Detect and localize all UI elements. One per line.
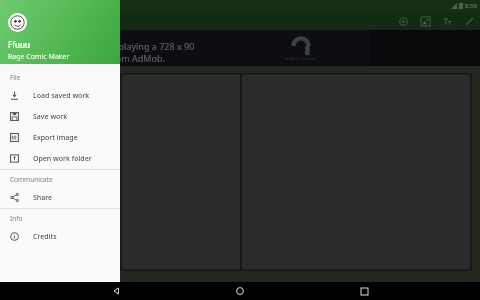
staticText: AdMob Console bbox=[286, 56, 316, 61]
staticText: Communicate bbox=[10, 175, 53, 184]
button[interactable]: Share bbox=[0, 187, 120, 208]
button[interactable]: Load saved work bbox=[0, 85, 120, 106]
button[interactable]: Insert image bbox=[418, 14, 432, 28]
staticText: Share bbox=[33, 193, 53, 203]
staticText: work! bbox=[41, 48, 56, 55]
button[interactable]: Text bbox=[440, 14, 454, 28]
staticText: File bbox=[10, 73, 21, 82]
button[interactable]: Draw bbox=[462, 14, 476, 28]
staticText: Rage Comic Maker bbox=[8, 52, 70, 62]
button[interactable]: Home bbox=[232, 283, 248, 299]
button[interactable]: Export image bbox=[0, 127, 120, 148]
staticText: Ffuuu bbox=[8, 39, 31, 50]
button[interactable]: Credits bbox=[0, 226, 120, 247]
button[interactable]: Open work folder bbox=[0, 148, 120, 169]
button[interactable]: Recents bbox=[356, 283, 372, 299]
staticText: Credits bbox=[33, 232, 57, 242]
staticText: Export image bbox=[33, 133, 78, 143]
staticText: 8:58 bbox=[465, 2, 477, 10]
staticText: You're displaying a 728 x 90 bbox=[78, 40, 195, 52]
staticText: Open work folder bbox=[33, 154, 92, 164]
staticText: Info bbox=[10, 214, 23, 223]
staticText: Load saved work bbox=[33, 91, 90, 101]
staticText: Save work bbox=[33, 112, 68, 122]
staticText: test ad from AdMob. bbox=[78, 52, 165, 64]
button[interactable]: Back bbox=[108, 283, 124, 299]
button[interactable]: Ffuuu bbox=[0, 0, 120, 64]
button[interactable]: Add bbox=[396, 14, 410, 28]
button[interactable]: Save work bbox=[0, 106, 120, 127]
